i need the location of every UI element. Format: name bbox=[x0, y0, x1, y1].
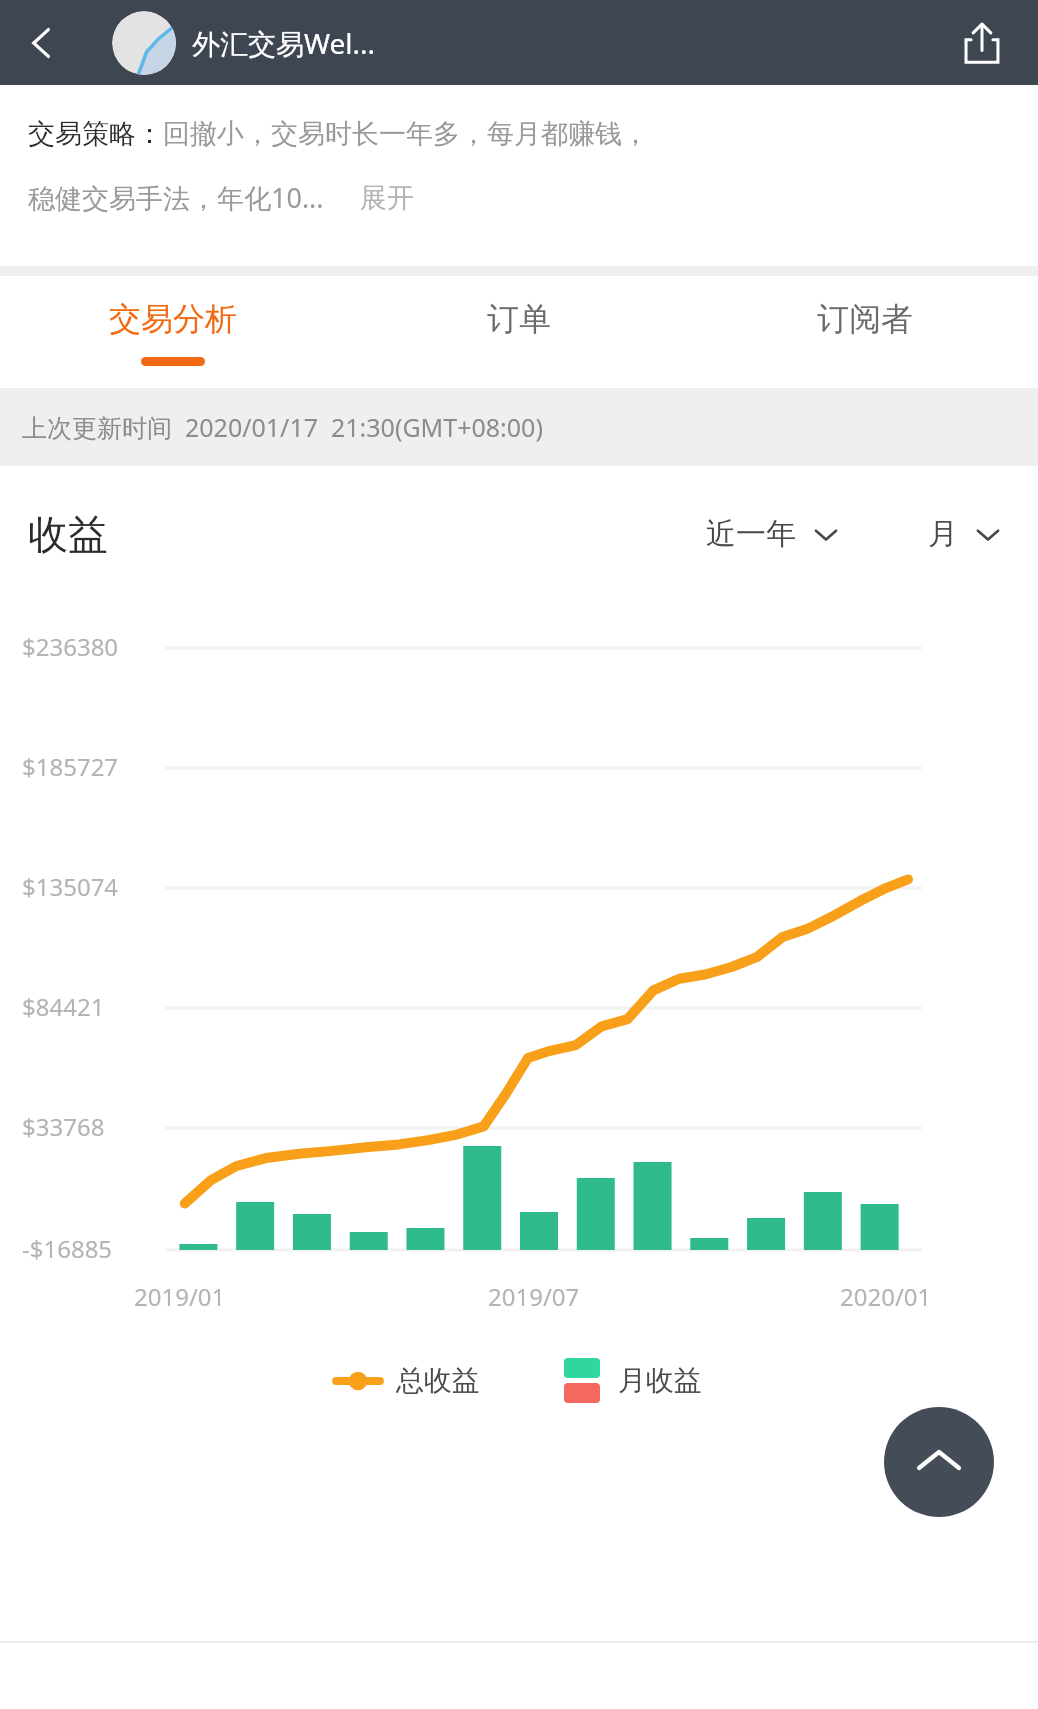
staticText: 订单 bbox=[487, 299, 551, 339]
button[interactable]: 总收益 bbox=[336, 1363, 480, 1398]
button[interactable]: 展开 bbox=[360, 181, 414, 215]
staticText: 收益 bbox=[28, 509, 108, 559]
staticText: $84421 bbox=[22, 990, 105, 1023]
staticText: $185727 bbox=[22, 750, 119, 783]
staticText: 上次更新时间 2020/01/17 21:30(GMT+08:00) bbox=[22, 410, 543, 444]
button[interactable]: Scroll to top bbox=[884, 1407, 994, 1517]
staticText: 展开 bbox=[360, 181, 414, 215]
button[interactable]: 订单 bbox=[346, 276, 692, 388]
staticText: $33768 bbox=[22, 1110, 105, 1143]
staticText: 外汇交易Wel... bbox=[192, 24, 376, 62]
staticText: 月收益 bbox=[618, 1363, 702, 1398]
staticText: 总收益 bbox=[396, 1363, 480, 1398]
staticText: 订阅者 bbox=[817, 299, 913, 339]
button[interactable]: 交易分析 bbox=[0, 276, 346, 388]
staticText: 交易分析 bbox=[109, 299, 237, 339]
staticText: 交易策略： bbox=[28, 117, 163, 151]
button[interactable]: Share bbox=[946, 7, 1018, 79]
staticText: 2019/07 bbox=[488, 1280, 580, 1313]
staticText: $236380 bbox=[22, 630, 119, 663]
staticText: 近一年 bbox=[706, 515, 796, 553]
staticText: -$16885 bbox=[22, 1232, 113, 1265]
staticText: 2020/01 bbox=[840, 1280, 932, 1313]
staticText: $135074 bbox=[22, 870, 119, 903]
button[interactable]: 月 bbox=[928, 515, 1002, 553]
button[interactable]: 近一年 bbox=[706, 515, 840, 553]
button[interactable]: 月收益 bbox=[564, 1358, 702, 1403]
staticText: 2019/01 bbox=[134, 1280, 226, 1313]
staticText: 稳健交易手法，年化10... bbox=[28, 179, 324, 216]
staticText: 回撤小，交易时长一年多，每月都赚钱， bbox=[163, 117, 649, 151]
button[interactable]: 订阅者 bbox=[692, 276, 1038, 388]
button[interactable]: Back bbox=[6, 7, 78, 79]
staticText: 月 bbox=[928, 515, 958, 553]
